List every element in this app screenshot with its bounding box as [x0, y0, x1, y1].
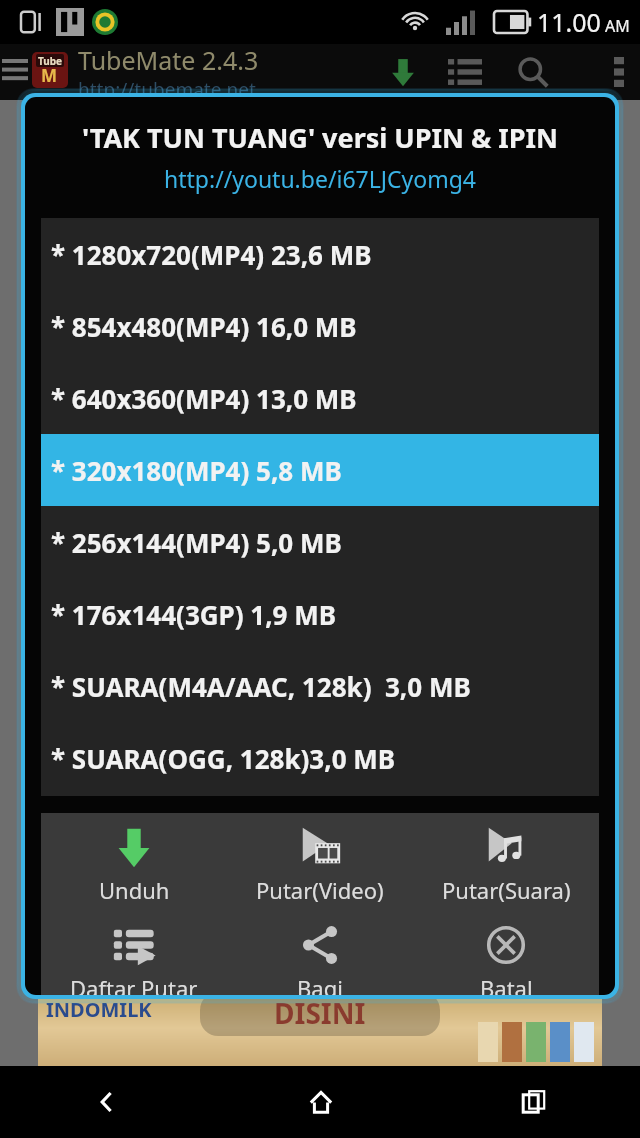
- staticText: * 640x360(MP4) 13,0 MB: [51, 381, 357, 416]
- staticText: * 854x480(MP4) 16,0 MB: [51, 309, 357, 344]
- button[interactable]: * 176x144(3GP) 1,9 MB: [41, 578, 599, 650]
- staticText: * 320x180(MP4) 5,8 MB: [51, 453, 342, 488]
- staticText: Putar(Video): [256, 875, 384, 905]
- staticText: M: [41, 64, 58, 87]
- button[interactable]: * SUARA(M4A/AAC, 128k) 3,0 MB: [41, 650, 599, 722]
- staticText: http://youtu.be/i67LJCyomg4: [164, 163, 477, 194]
- button[interactable]: Unduh: [41, 813, 227, 911]
- button[interactable]: Daftar Putar: [41, 911, 227, 995]
- staticText: * SUARA(OGG, 128k)3,0 MB: [51, 741, 396, 776]
- button[interactable]: Bagi: [227, 911, 413, 995]
- staticText: Bagi: [297, 973, 343, 995]
- button[interactable]: Batal: [413, 911, 599, 995]
- button[interactable]: * 640x360(MP4) 13,0 MB: [41, 362, 599, 434]
- button[interactable]: Putar(Video): [227, 813, 413, 911]
- staticText: http://tubemate.net: [78, 77, 256, 99]
- staticText: INDOMILK: [46, 996, 152, 1023]
- button[interactable]: Recents: [427, 1066, 640, 1138]
- staticText: DISINI: [274, 994, 366, 1032]
- button[interactable]: * 320x180(MP4) 5,8 MB: [41, 434, 599, 506]
- button[interactable]: * 854x480(MP4) 16,0 MB: [41, 290, 599, 362]
- button[interactable]: * 1280x720(MP4) 23,6 MB: [41, 218, 599, 290]
- staticText: 11.00: [537, 5, 601, 39]
- staticText: Tube: [38, 54, 63, 67]
- staticText: * SUARA(M4A/AAC, 128k) 3,0 MB: [51, 669, 471, 704]
- button[interactable]: * 256x144(MP4) 5,0 MB: [41, 506, 599, 578]
- button[interactable]: Putar(Suara): [413, 813, 599, 911]
- button[interactable]: * SUARA(OGG, 128k)3,0 MB: [41, 722, 599, 794]
- staticText: TubeMate 2.4.3: [78, 43, 259, 77]
- button[interactable]: Back: [0, 1066, 214, 1138]
- staticText: * 256x144(MP4) 5,0 MB: [51, 525, 342, 560]
- staticText: * 1280x720(MP4) 23,6 MB: [51, 237, 372, 272]
- button[interactable]: Home: [214, 1066, 427, 1138]
- staticText: Batal: [480, 973, 533, 995]
- staticText: * 176x144(3GP) 1,9 MB: [51, 597, 337, 632]
- staticText: AM: [605, 15, 630, 37]
- staticText: Putar(Suara): [442, 875, 571, 905]
- staticText: 'TAK TUN TUANG' versi UPIN & IPIN: [82, 119, 559, 156]
- staticText: Daftar Putar: [70, 973, 198, 995]
- button[interactable]: http://youtu.be/i67LJCyomg4: [164, 163, 477, 194]
- staticText: Unduh: [99, 875, 170, 905]
